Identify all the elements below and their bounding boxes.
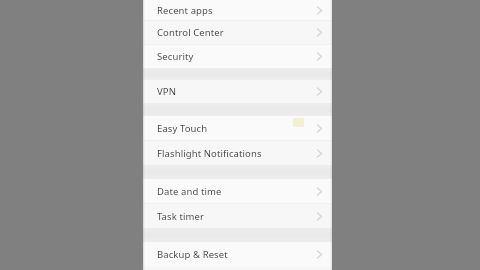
staticText: Flashlight Notifications — [157, 147, 316, 160]
staticText: Date and time — [157, 185, 316, 198]
button[interactable]: Easy Touch — [143, 116, 332, 140]
button[interactable]: Security — [143, 45, 332, 68]
button[interactable]: Backup & Reset — [143, 242, 332, 266]
button[interactable]: Flashlight Notifications — [143, 141, 332, 165]
button[interactable]: Recent apps — [143, 0, 332, 20]
button[interactable]: VPN — [143, 80, 332, 103]
staticText: Backup & Reset — [157, 248, 316, 261]
button[interactable]: Task timer — [143, 204, 332, 228]
staticText: Recent apps — [157, 4, 316, 17]
staticText: VPN — [157, 85, 316, 98]
staticText: Control Center — [157, 26, 316, 39]
staticText: Easy Touch — [157, 122, 316, 135]
button[interactable]: Control Center — [143, 21, 332, 44]
staticText: Security — [157, 50, 316, 63]
staticText: Task timer — [157, 210, 316, 223]
button[interactable]: Date and time — [143, 179, 332, 203]
